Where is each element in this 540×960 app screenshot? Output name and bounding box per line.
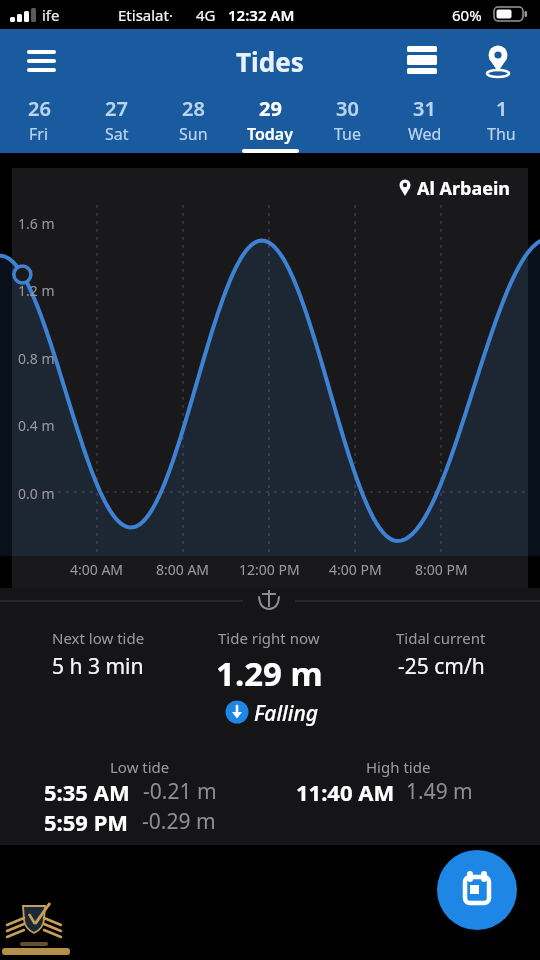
staticText: -0.29 m <box>142 807 216 836</box>
staticText: 26 <box>28 95 51 122</box>
button[interactable]: 1 <box>463 85 540 153</box>
staticText: 30 <box>336 95 359 122</box>
staticText: Tide right now <box>218 628 320 648</box>
staticText: Al Arbaein <box>417 176 510 201</box>
staticText: 0.4 m <box>18 416 55 435</box>
staticText: 8:00 AM <box>156 560 210 579</box>
staticText: 27 <box>105 95 128 122</box>
staticText: Sat <box>105 123 129 145</box>
staticText: 1 <box>496 95 508 122</box>
staticText: Wed <box>408 123 442 145</box>
staticText: Sun <box>179 123 208 145</box>
staticText: Thu <box>487 123 516 145</box>
staticText: 1.29 m <box>216 651 323 696</box>
staticText: 11:40 AM <box>296 777 395 807</box>
staticText: Low tide <box>110 757 170 777</box>
staticText: 1.49 m <box>406 777 473 806</box>
staticText: 28 <box>182 95 205 122</box>
staticText: Etisalat· <box>118 5 173 25</box>
staticText: Falling <box>254 699 319 728</box>
button[interactable]: 28 <box>155 85 232 153</box>
button[interactable] <box>437 850 517 930</box>
staticText: Next low tide <box>52 628 145 648</box>
staticText: 5:59 PM <box>44 807 129 837</box>
staticText: 4:00 PM <box>329 560 382 579</box>
staticText: 29 <box>259 95 282 122</box>
staticText: 4:00 AM <box>70 560 124 579</box>
button[interactable]: 30 <box>309 85 386 153</box>
staticText: 5 h 3 min <box>52 652 144 681</box>
staticText: 1.2 m <box>18 281 55 300</box>
button[interactable]: 29 <box>232 85 309 153</box>
staticText: 12:00 PM <box>239 560 300 579</box>
staticText: -0.21 m <box>143 777 217 806</box>
staticText: 12:32 AM <box>228 5 295 25</box>
staticText: Today <box>247 123 294 145</box>
staticText: Tides <box>236 44 304 79</box>
button[interactable]: 27 <box>78 85 155 153</box>
staticText: Tidal current <box>396 628 486 648</box>
staticText: Tue <box>334 123 362 145</box>
staticText: 1.6 m <box>18 214 55 233</box>
staticText: 31 <box>413 95 436 122</box>
staticText: 4G <box>196 5 216 25</box>
staticText: 5:35 AM <box>44 777 130 807</box>
staticText: ife <box>42 5 60 25</box>
button[interactable] <box>478 40 520 80</box>
button[interactable]: 26 <box>0 85 78 153</box>
staticText: 8:00 PM <box>415 560 468 579</box>
staticText: 60% <box>452 5 482 25</box>
staticText: Fri <box>29 123 49 145</box>
staticText: 0.8 m <box>18 349 55 368</box>
staticText: 0.0 m <box>18 484 55 503</box>
staticText: High tide <box>366 757 431 777</box>
button[interactable] <box>18 42 66 72</box>
staticText: -25 cm/h <box>398 652 485 681</box>
button[interactable] <box>400 40 444 78</box>
button[interactable]: 31 <box>386 85 463 153</box>
